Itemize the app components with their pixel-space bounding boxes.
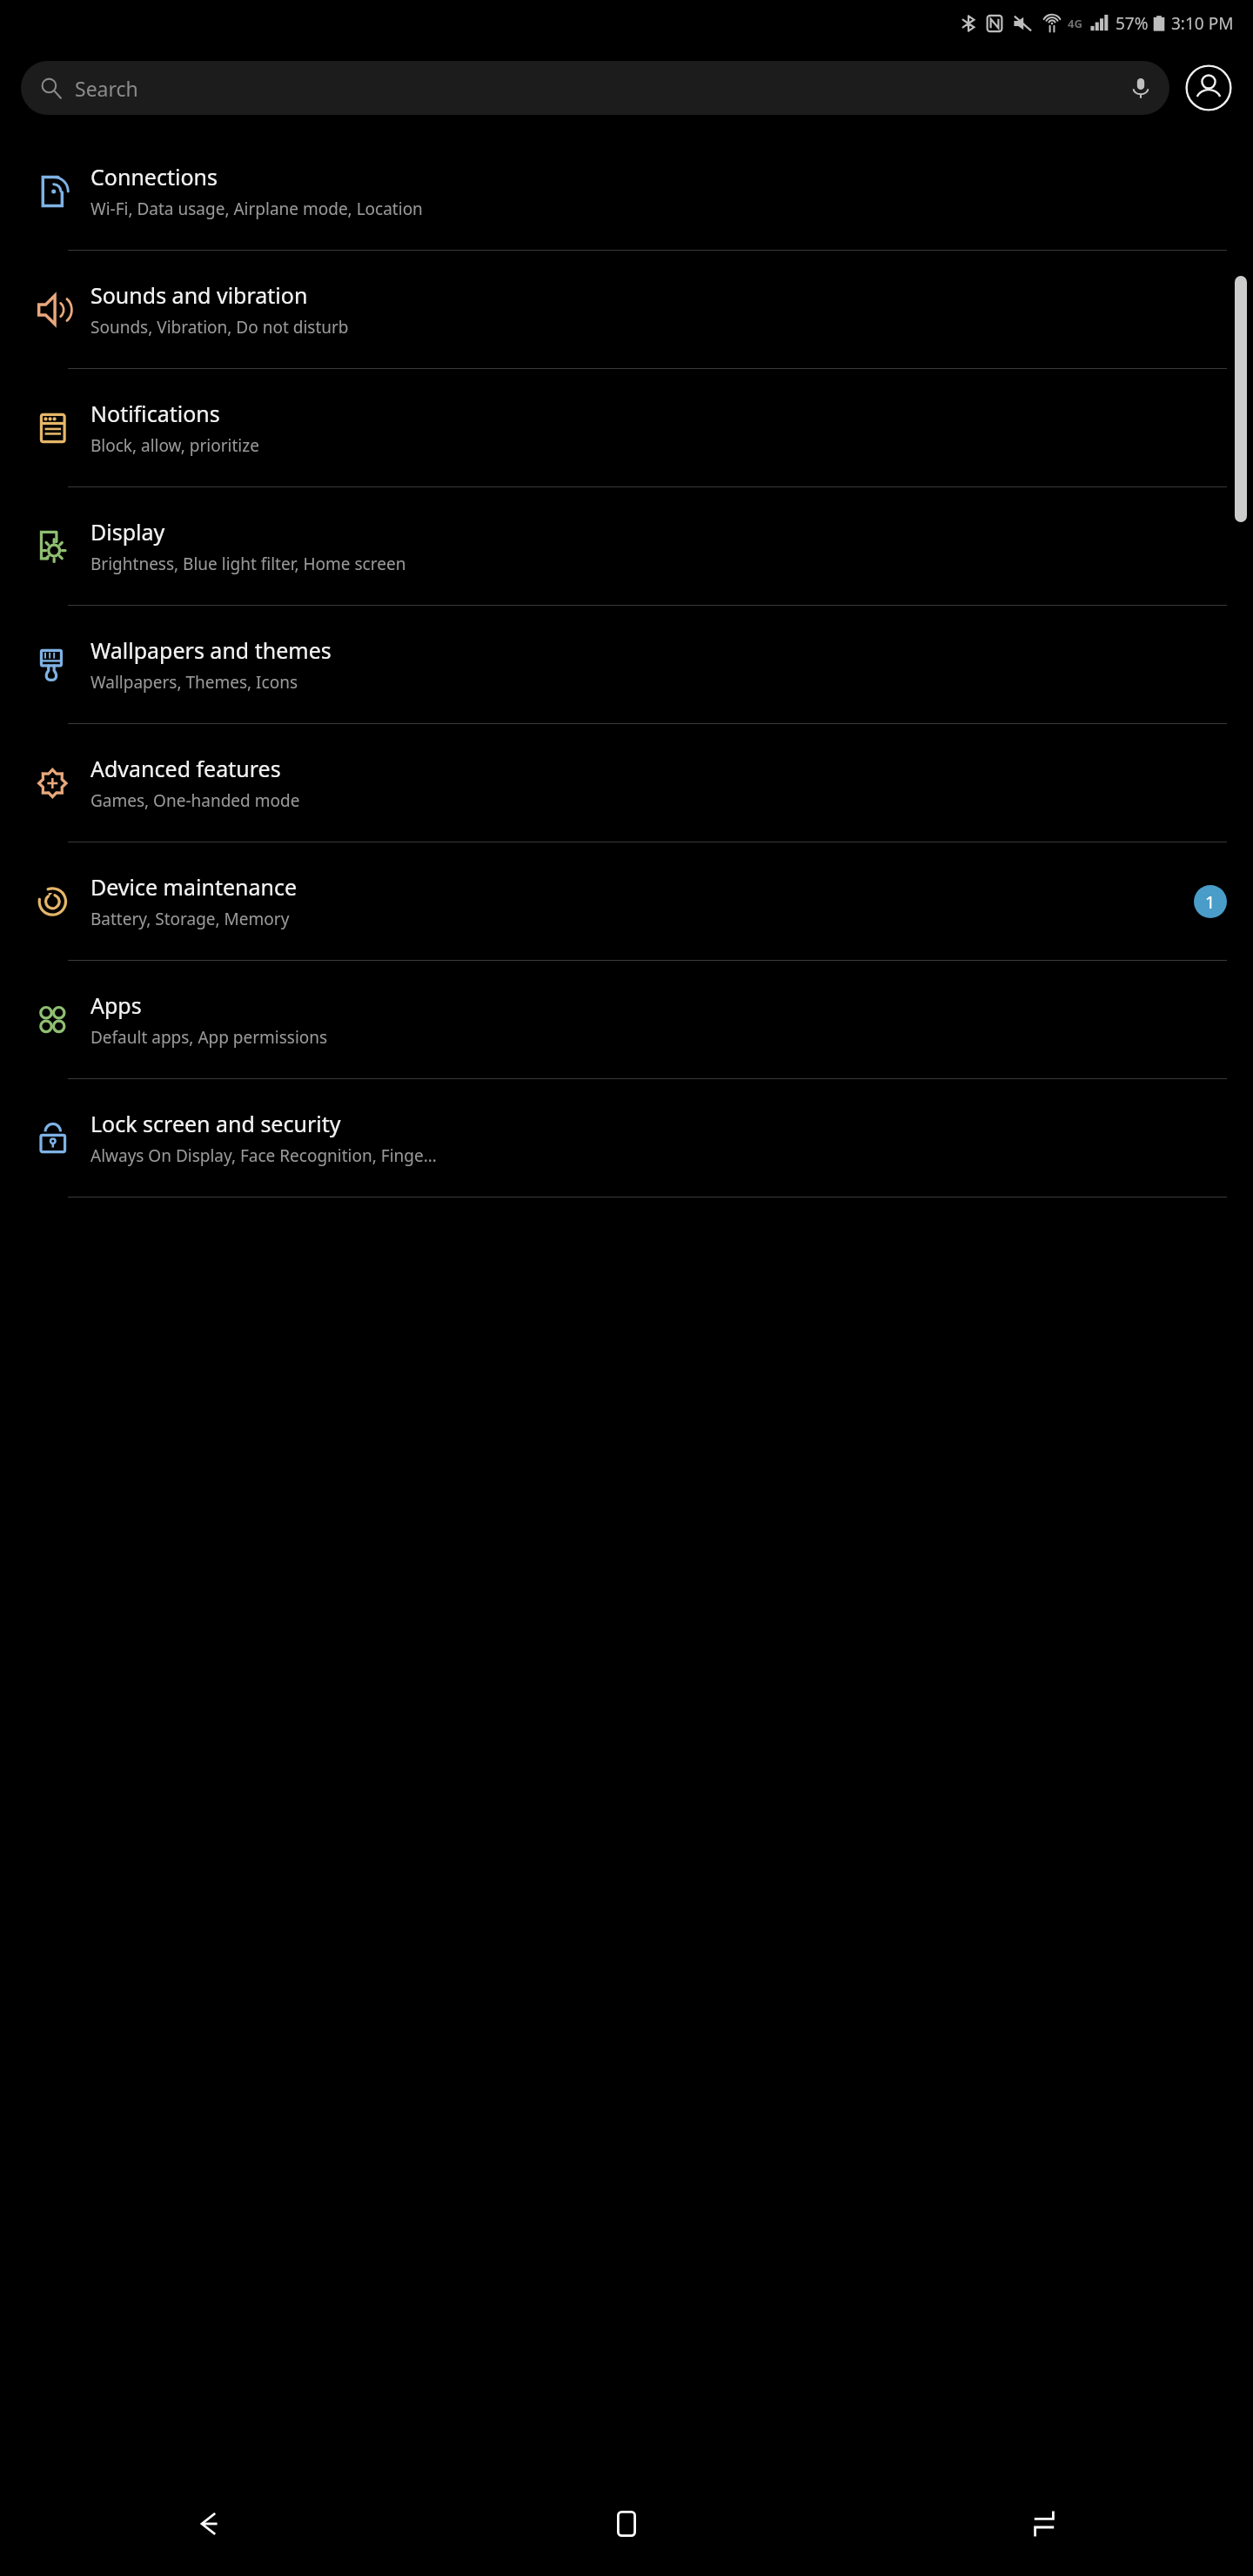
staticText: 1	[1205, 890, 1216, 914]
staticText: Display	[90, 517, 165, 547]
staticText: Games, One-handed mode	[90, 789, 300, 812]
button[interactable]: Sounds and vibration	[0, 251, 1253, 368]
staticText: Connections	[90, 162, 218, 191]
button[interactable]: Connections	[0, 132, 1253, 250]
staticText: Sounds, Vibration, Do not disturb	[90, 316, 349, 339]
staticText: 4G	[1068, 16, 1082, 31]
staticText: 3:10 PM	[1171, 12, 1234, 35]
staticText: Sounds and vibration	[90, 280, 308, 310]
button[interactable]: Advanced features	[0, 724, 1253, 842]
button[interactable]: Wallpapers and themes	[0, 606, 1253, 723]
staticText: Notifications	[90, 399, 220, 428]
staticText: 57%	[1116, 12, 1149, 35]
staticText: Always On Display, Face Recognition, Fin…	[90, 1144, 437, 1167]
staticText: Lock screen and security	[90, 1109, 341, 1138]
staticText: Wallpapers, Themes, Icons	[90, 671, 298, 694]
staticText: Apps	[90, 990, 142, 1020]
staticText: Search	[75, 75, 138, 102]
staticText: Battery, Storage, Memory	[90, 908, 290, 930]
staticText: Brightness, Blue light filter, Home scre…	[90, 553, 406, 575]
staticText: Default apps, App permissions	[90, 1026, 328, 1049]
staticText: Block, allow, prioritize	[90, 434, 259, 457]
button[interactable]: Display	[0, 487, 1253, 605]
button[interactable]: Recents	[835, 2472, 1253, 2576]
button[interactable]: Back	[0, 2472, 418, 2576]
button[interactable]: Account	[1185, 64, 1232, 111]
staticText: Advanced features	[90, 754, 281, 783]
button[interactable]: Device maintenance	[0, 842, 1253, 960]
staticText: Device maintenance	[90, 872, 298, 902]
button[interactable]: Apps	[0, 961, 1253, 1078]
staticText: Wi-Fi, Data usage, Airplane mode, Locati…	[90, 198, 423, 220]
button[interactable]: Home	[418, 2472, 835, 2576]
button[interactable]: Search	[21, 61, 1169, 115]
button[interactable]: Lock screen and security	[0, 1079, 1253, 1197]
staticText: Wallpapers and themes	[90, 635, 332, 665]
button[interactable]: Notifications	[0, 369, 1253, 486]
